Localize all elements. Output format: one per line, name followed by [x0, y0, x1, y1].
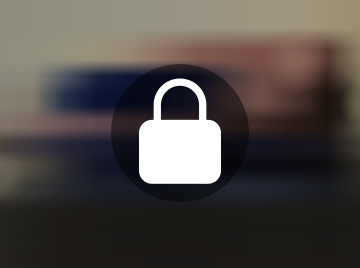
button[interactable]: Locked — private content	[139, 78, 221, 184]
